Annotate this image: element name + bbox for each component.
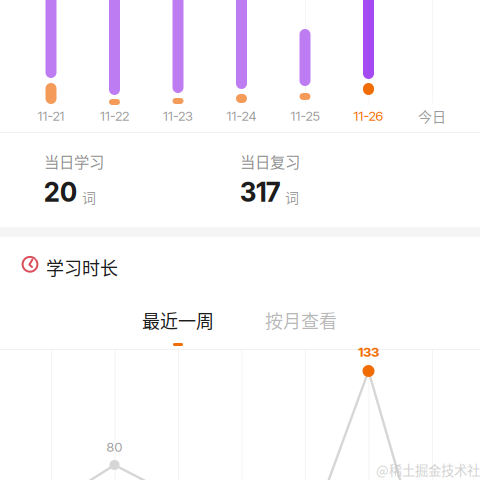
staticText: 词 [82,187,96,207]
staticText: 11-25 [290,108,319,124]
staticText: 11-21 [37,108,64,124]
staticText: 20 [44,176,77,208]
staticText: 学习时长 [46,254,118,280]
button[interactable]: 最近一周 [133,305,223,351]
staticText: 当日复习 [240,150,300,172]
staticText: 按月查看 [265,307,337,333]
button[interactable]: 按月查看 [256,305,346,351]
staticText: 当日学习 [44,150,104,172]
staticText: 11-24 [226,108,256,124]
staticText: 11-22 [100,108,129,124]
staticText: 11-26 [353,108,383,124]
staticText: 最近一周 [142,307,214,333]
staticText: @稀土掘金技术社区 [376,460,480,480]
staticText: 80 [106,439,122,455]
staticText: 11-23 [163,108,193,124]
staticText: 133 [358,344,379,360]
staticText: 词 [285,187,299,207]
staticText: 317 [240,176,280,208]
staticText: 今日 [418,106,446,126]
